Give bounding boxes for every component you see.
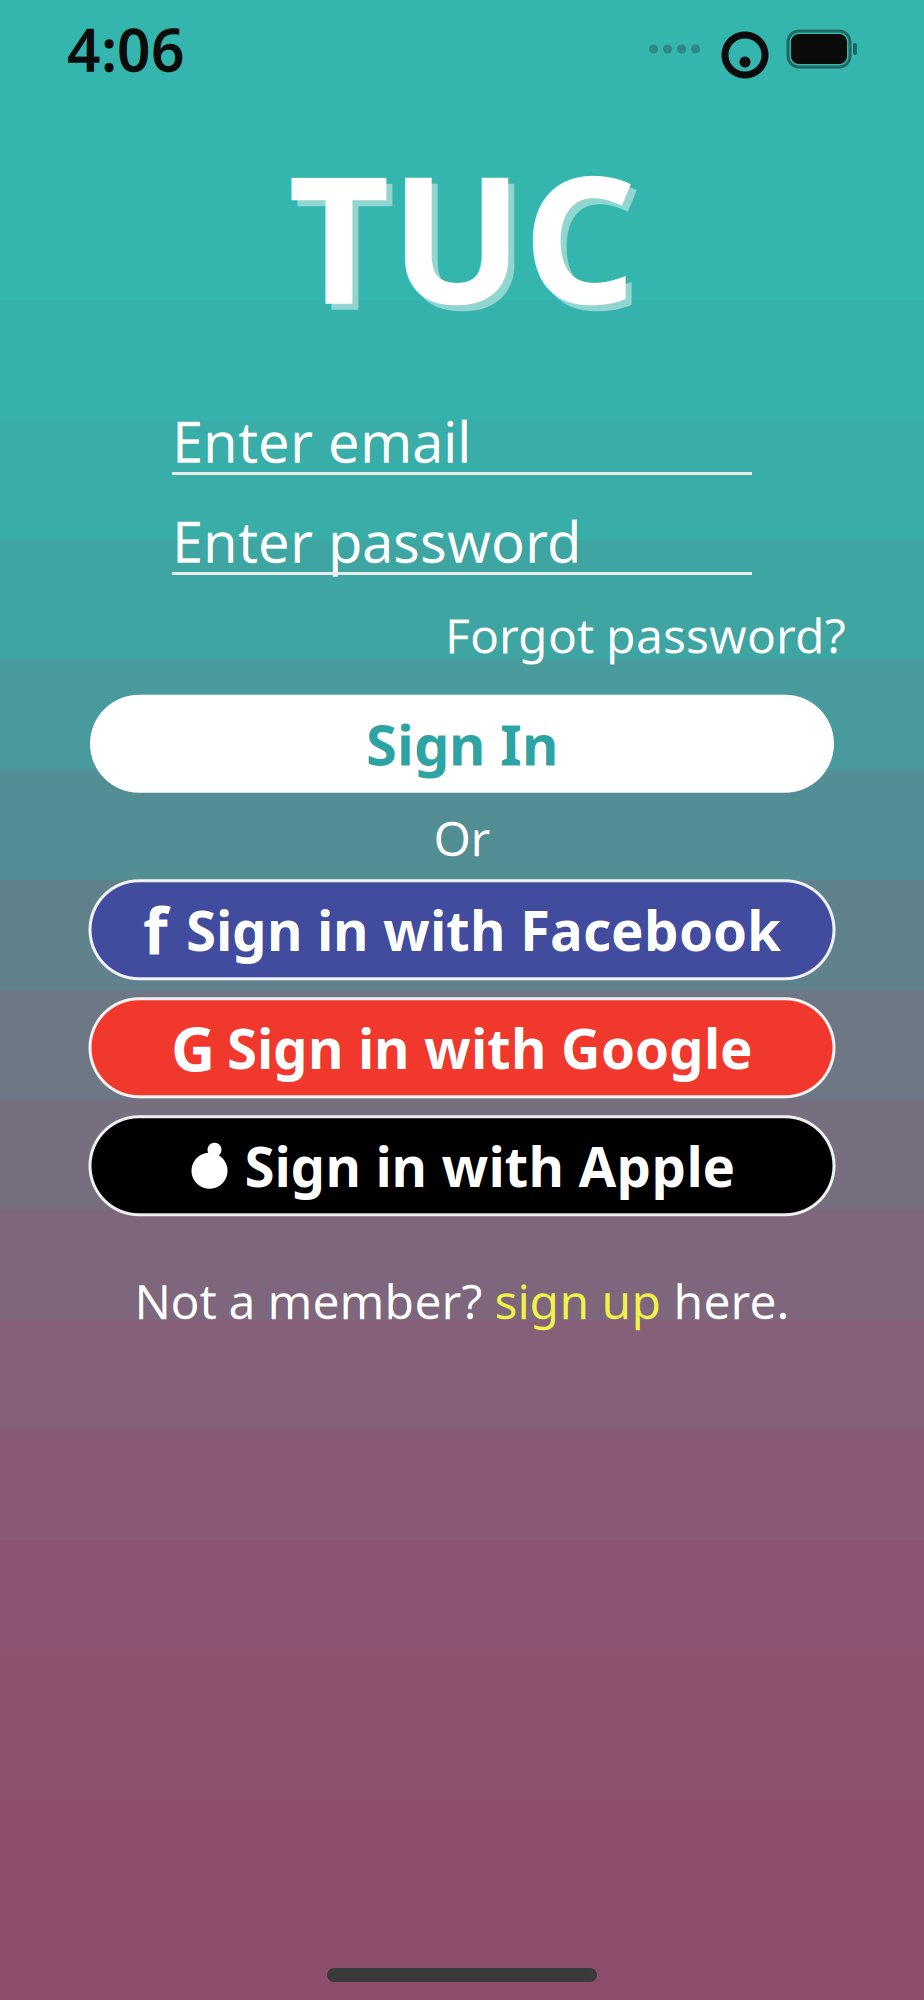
staticText: Enter password	[172, 504, 581, 578]
button[interactable]: Not a member?	[124, 1261, 799, 1340]
staticText: TUC	[294, 124, 642, 358]
staticText: Not a member?	[134, 1269, 494, 1332]
button[interactable]: G	[90, 999, 834, 1097]
staticText: Forgot password?	[445, 603, 846, 667]
button[interactable]: f	[90, 881, 834, 979]
staticText: Sign in with Facebook	[186, 893, 781, 966]
button[interactable]: Sign In	[90, 695, 834, 793]
button[interactable]: Sign in with Apple	[90, 1117, 834, 1215]
staticText: TUC	[288, 118, 636, 352]
button[interactable]: Forgot password?	[439, 597, 852, 673]
staticText: Sign in with Apple	[244, 1129, 735, 1202]
staticText: sign up	[494, 1269, 661, 1332]
staticText: Enter email	[172, 404, 471, 478]
staticText: G	[171, 1007, 215, 1088]
staticText: 4:06	[67, 10, 185, 88]
staticText: Sign In	[366, 707, 558, 781]
staticText: Sign in with Google	[227, 1011, 753, 1084]
staticText: f	[143, 887, 168, 972]
staticText: here.	[661, 1269, 789, 1332]
staticText: Or	[433, 806, 490, 870]
